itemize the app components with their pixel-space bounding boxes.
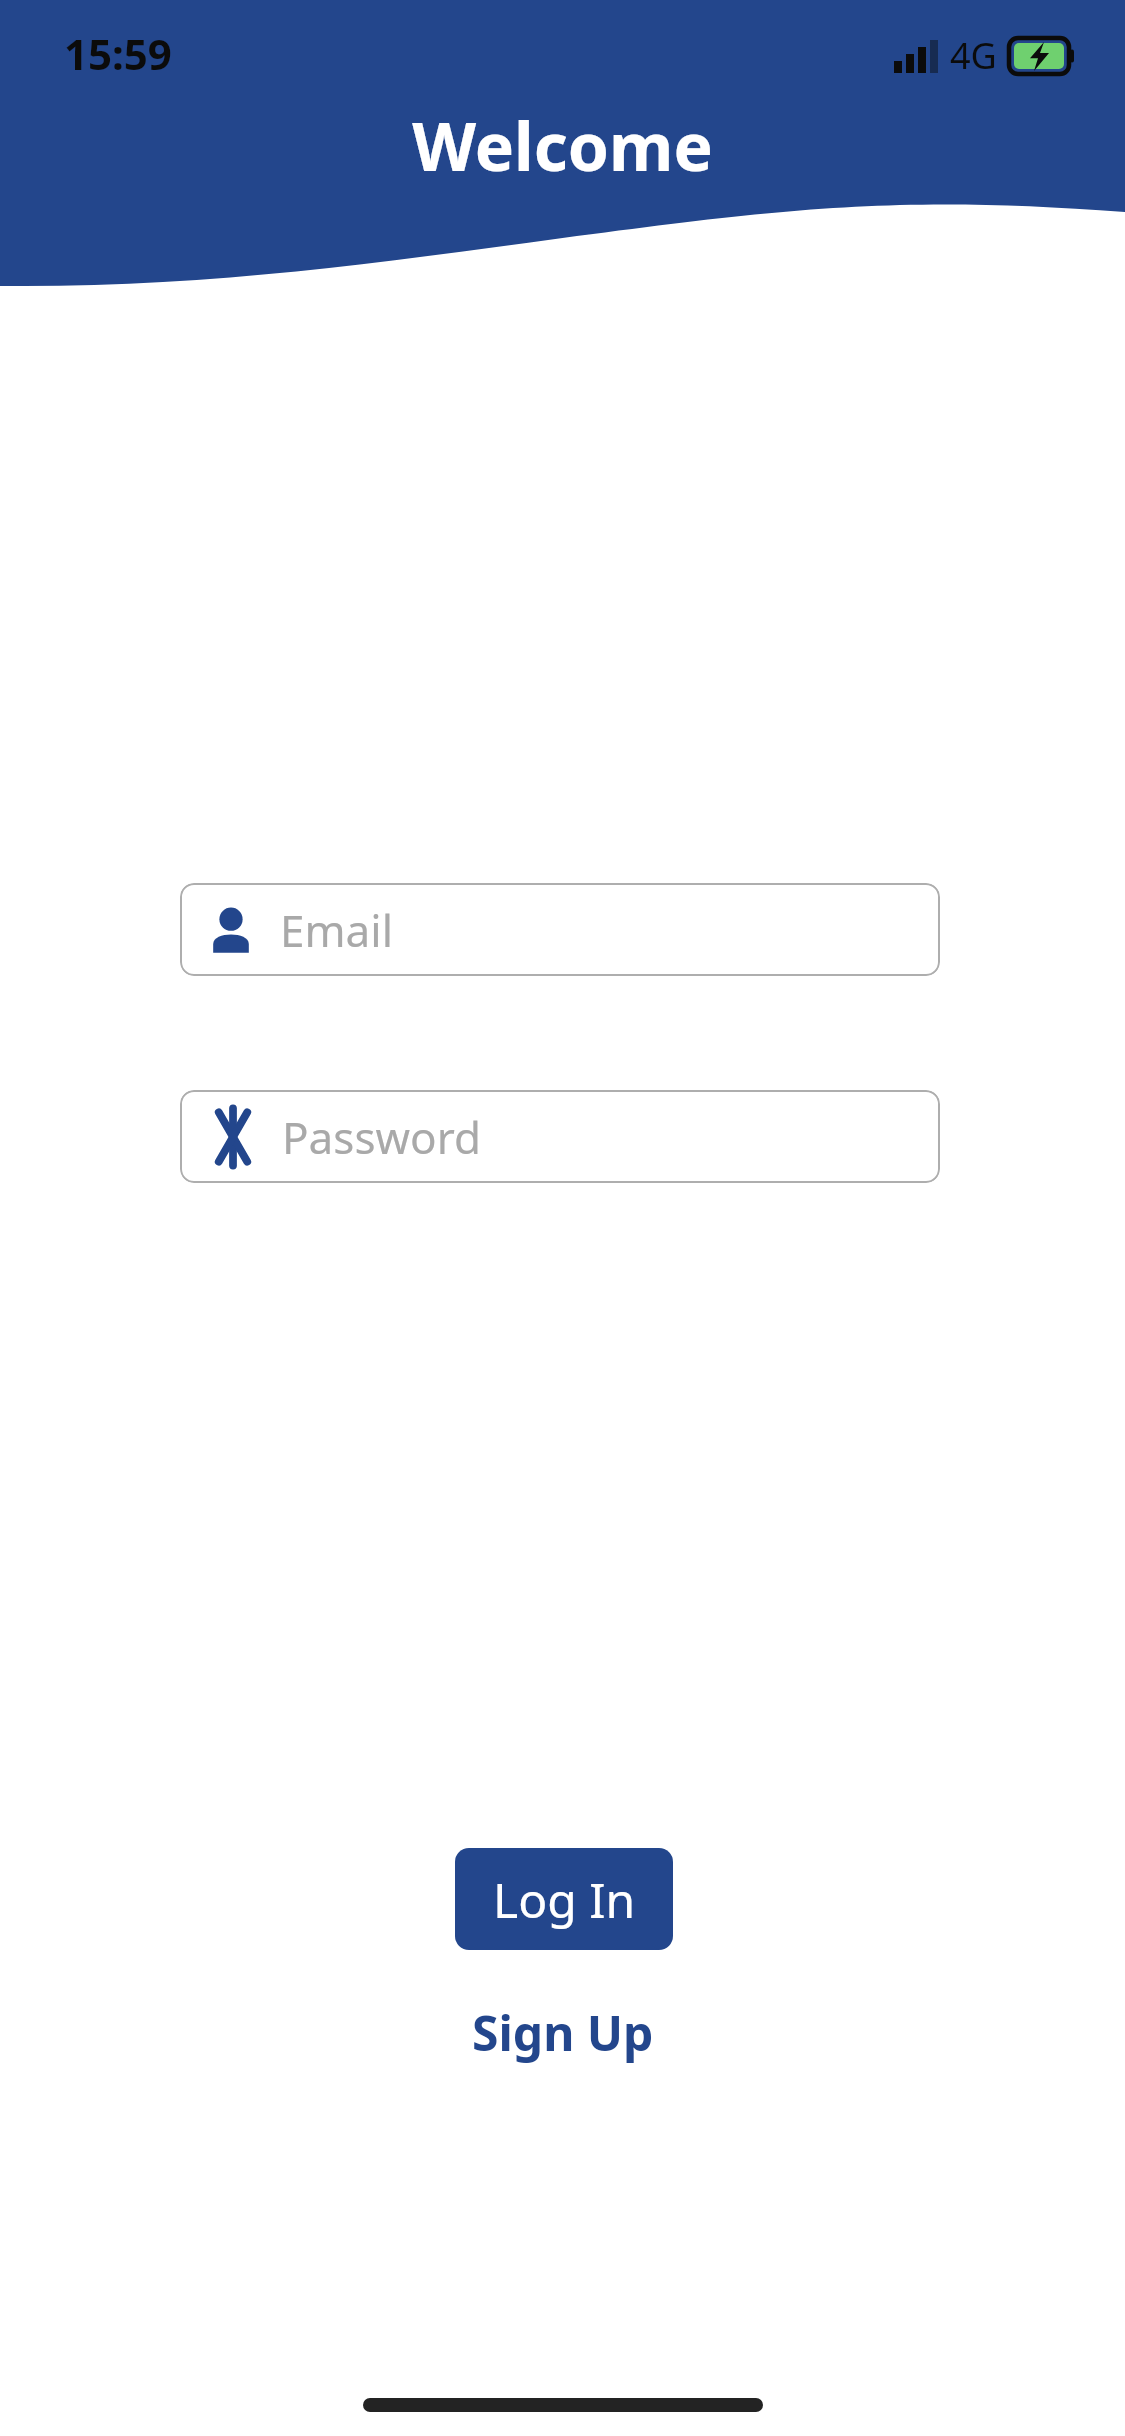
staticText: Sign Up — [472, 2000, 654, 2065]
staticText: Email — [280, 900, 393, 960]
staticText: Welcome — [0, 100, 1125, 190]
other: Email — [204, 903, 258, 957]
button[interactable]: Email — [180, 883, 940, 976]
other: Password — [202, 1106, 264, 1168]
staticText: Password — [282, 1107, 482, 1167]
button[interactable]: Log In — [455, 1848, 673, 1950]
button[interactable]: Password — [180, 1090, 940, 1183]
staticText: 15:59 — [64, 25, 172, 82]
staticText: 4G — [950, 31, 997, 80]
button[interactable]: Sign Up — [448, 1990, 678, 2075]
staticText: Log In — [493, 1867, 636, 1932]
